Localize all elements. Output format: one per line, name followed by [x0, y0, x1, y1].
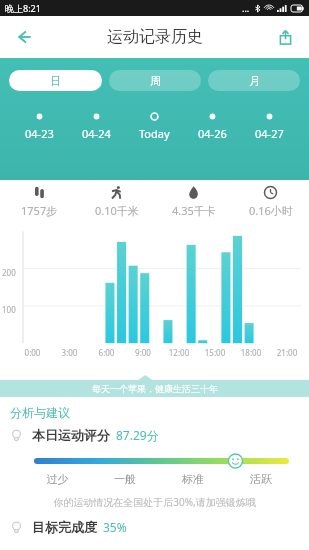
staticText: 每天一个苹果，健康生活三十年 — [92, 383, 218, 394]
staticText: 月 — [249, 74, 260, 88]
button[interactable]: Today — [136, 110, 173, 143]
staticText: 15:00 — [197, 347, 233, 358]
staticText: 0:00 — [14, 347, 51, 358]
staticText: 6:00 — [88, 347, 125, 358]
button[interactable]: Back — [8, 21, 40, 53]
staticText: 0.10千米 — [95, 203, 139, 218]
button[interactable]: 04-23 — [22, 110, 57, 143]
staticText: 0.16小时 — [249, 203, 293, 218]
staticText: 标准 — [159, 472, 227, 486]
staticText: 18:00 — [233, 347, 269, 358]
staticText: 运动记录历史 — [107, 27, 203, 47]
staticText: 3:00 — [51, 347, 88, 358]
staticText: 活跃 — [227, 472, 295, 486]
staticText: 100 — [2, 304, 16, 315]
staticText: 04-27 — [255, 126, 284, 141]
staticText: 晚上8:21 — [5, 2, 41, 14]
staticText: 04-23 — [25, 126, 54, 141]
button[interactable]: 04-24 — [79, 110, 114, 143]
staticText: 周 — [150, 74, 161, 88]
staticText: 你的运动情况在全国处于后30%,请加强锻炼哦 — [10, 495, 299, 509]
staticText: 87.29分 — [116, 427, 159, 443]
staticText: 1757步 — [21, 203, 58, 218]
button[interactable]: 0.16小时 — [232, 185, 309, 218]
staticText: 04-26 — [198, 126, 227, 141]
staticText: 日 — [50, 74, 61, 88]
button[interactable]: 月 — [208, 70, 300, 91]
staticText: ... — [242, 2, 250, 14]
button[interactable]: 04-27 — [252, 110, 287, 143]
staticText: 200 — [2, 267, 16, 278]
staticText: 过少 — [24, 472, 91, 486]
staticText: 21:00 — [269, 347, 305, 358]
button[interactable]: 1757步 — [0, 185, 78, 218]
staticText: Today — [139, 126, 170, 141]
button[interactable]: 0.10千米 — [78, 185, 155, 218]
staticText: 本日运动评分 — [32, 427, 110, 443]
button[interactable]: 4.35千卡 — [155, 185, 232, 218]
staticText: 9:00 — [125, 347, 161, 358]
staticText: 一般 — [91, 472, 159, 486]
staticText: 分析与建议 — [10, 405, 70, 420]
button[interactable]: 周 — [109, 70, 201, 91]
staticText: 4.35千卡 — [172, 203, 216, 218]
staticText: 04-24 — [82, 126, 111, 141]
button[interactable]: Share — [269, 21, 301, 53]
button[interactable]: 日 — [9, 70, 102, 91]
button[interactable]: 04-26 — [195, 110, 230, 143]
staticText: 12:00 — [161, 347, 197, 358]
staticText: 目标完成度 — [32, 519, 97, 535]
staticText: 35% — [103, 519, 127, 535]
